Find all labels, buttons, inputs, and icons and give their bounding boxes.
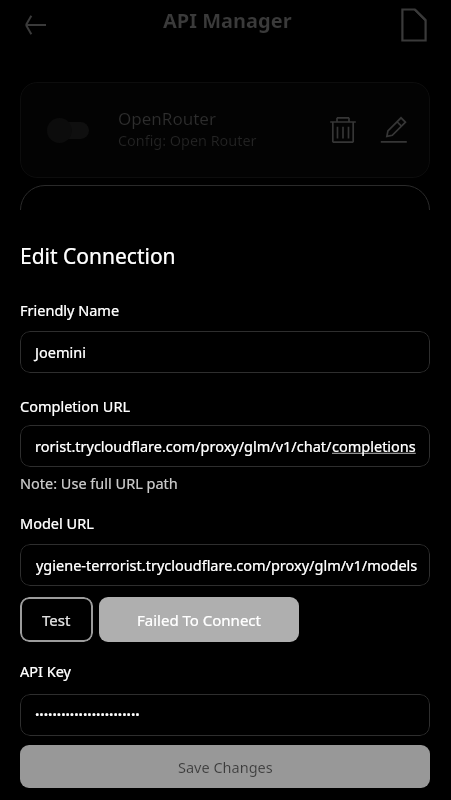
staticText: Test — [42, 610, 71, 630]
button[interactable]: rorist.trycloudflare.com/proxy/glm/v1/ch… — [20, 425, 430, 467]
button[interactable]: Export configuration — [392, 3, 436, 47]
button[interactable]: Delete — [326, 113, 360, 147]
staticText: Joemini — [35, 342, 86, 362]
staticText: Completion URL — [20, 396, 131, 416]
button[interactable]: Edit — [377, 113, 411, 147]
button[interactable]: •••••••••••••••••••••••• — [20, 694, 430, 736]
staticText: Friendly Name — [20, 300, 120, 320]
staticText: Edit Connection — [20, 242, 176, 271]
staticText: API Key — [20, 661, 71, 681]
button[interactable]: hygiene-terrorist.trycloudflare.com/prox… — [20, 544, 430, 586]
button[interactable]: Failed To Connect — [99, 597, 299, 642]
button[interactable]: Enable connection — [47, 112, 89, 148]
button[interactable]: Save Changes — [20, 745, 430, 788]
button[interactable]: Test — [20, 597, 93, 642]
button[interactable]: Enable connection — [20, 82, 430, 178]
staticText: rorist.trycloudflare.com/proxy/glm/v1/ch… — [35, 436, 332, 456]
staticText: •••••••••••••••••••••••• — [35, 707, 140, 723]
staticText: OpenRouter — [118, 107, 216, 130]
staticText: hygiene-terrorist.trycloudflare.com/prox… — [35, 555, 418, 575]
button[interactable]: Joemini — [20, 331, 430, 373]
staticText: Model URL — [20, 513, 94, 533]
staticText: Note: Use full URL path — [20, 473, 178, 493]
staticText: completions — [332, 436, 416, 456]
button[interactable]: Back — [14, 3, 58, 47]
staticText: Save Changes — [178, 757, 273, 777]
staticText: Config: Open Router — [118, 131, 257, 151]
staticText: API Manager — [163, 7, 292, 34]
staticText: Failed To Connect — [137, 610, 261, 630]
